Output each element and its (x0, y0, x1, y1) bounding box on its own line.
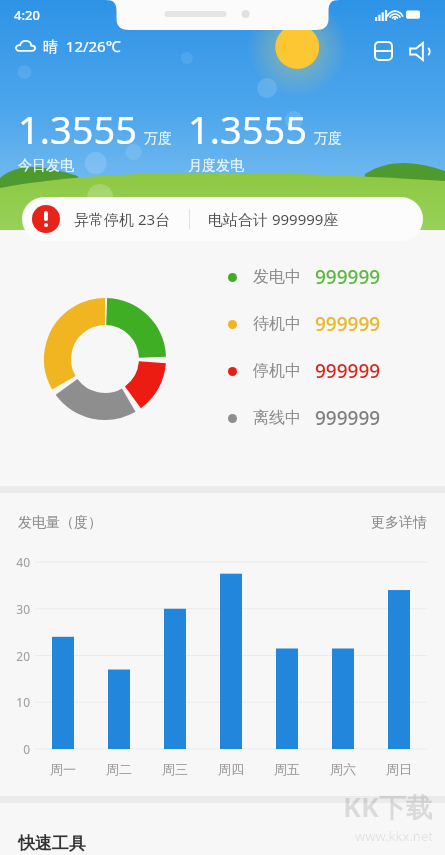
staticText: 40 (4, 554, 30, 570)
staticText: 电站合计 999999座 (208, 209, 339, 229)
button[interactable]: 异常停机 23台 (22, 197, 423, 241)
button[interactable]: 停机中 (228, 358, 381, 384)
staticText: 周三 (162, 761, 188, 777)
button[interactable]: Scan (366, 34, 400, 68)
button[interactable]: 更多详情 (371, 514, 427, 532)
staticText: 异常停机 23台 (74, 209, 171, 229)
staticText: 更多详情 (371, 514, 427, 532)
staticText: 待机中 (253, 314, 301, 334)
staticText: 999999 (315, 358, 381, 384)
staticText: 万度 (144, 130, 172, 148)
staticText: 30 (4, 601, 30, 617)
staticText: 今日发电 (18, 157, 74, 175)
staticText: 4:20 (14, 6, 40, 24)
staticText: 0 (4, 741, 30, 757)
staticText: 10 (4, 694, 30, 710)
staticText: 999999 (315, 311, 381, 337)
button[interactable]: 离线中 (228, 405, 381, 431)
button[interactable]: 发电中 (228, 264, 381, 290)
staticText: 发电中 (253, 267, 301, 287)
staticText: KK下载 (343, 788, 433, 825)
staticText: 周五 (274, 761, 300, 777)
staticText: 快速工具 (18, 833, 86, 854)
staticText: 20 (4, 648, 30, 664)
button[interactable]: 待机中 (228, 311, 381, 337)
button[interactable]: Announcements (403, 34, 437, 68)
staticText: 周二 (106, 761, 132, 777)
staticText: 999999 (315, 264, 381, 290)
staticText: 发电量（度） (18, 514, 102, 532)
staticText: 999999 (315, 405, 381, 431)
staticText: www.kkx.net (355, 827, 433, 845)
staticText: 晴 12/26℃ (43, 36, 121, 56)
staticText: 停机中 (253, 361, 301, 381)
staticText: 离线中 (253, 408, 301, 428)
staticText: 周日 (386, 761, 412, 777)
staticText: 周一 (50, 761, 76, 777)
staticText: 月度发电 (188, 157, 244, 175)
staticText: 1.3555 (18, 103, 137, 155)
staticText: 1.3555 (188, 103, 307, 155)
staticText: 周四 (218, 761, 244, 777)
staticText: 周六 (330, 761, 356, 777)
staticText: 万度 (314, 130, 342, 148)
